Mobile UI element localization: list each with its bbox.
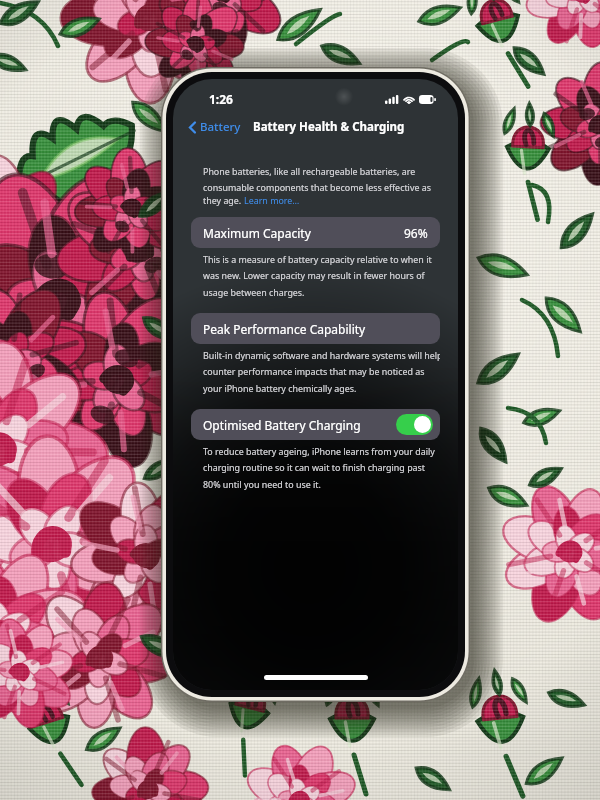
staticText: This is a measure of battery capacity re… (203, 253, 432, 299)
button[interactable]: Optimised Battery Charging toggle, on (396, 414, 433, 435)
staticText: Battery (200, 119, 241, 135)
staticText: Built-in dynamiç software and hardware s… (203, 349, 440, 395)
staticText: Phone batteries, like all rechargeable b… (203, 165, 431, 194)
staticText: Battery Health & Charging (253, 119, 405, 135)
staticText: they age. (203, 194, 244, 206)
staticText: Optimised Battery Charging (203, 417, 361, 433)
button[interactable]: Maximum Capacity (191, 217, 440, 248)
staticText: Maximum Capacity (203, 225, 311, 241)
button[interactable]: Learn more… (244, 194, 300, 206)
button[interactable]: Optimised Battery Charging (191, 409, 440, 440)
staticText: To reduce battery ageing, iPhone learns … (203, 445, 435, 491)
staticText: Peak Performance Capability (203, 321, 366, 337)
button[interactable]: Battery (186, 116, 244, 138)
button[interactable]: Peak Performance Capability (191, 313, 440, 344)
staticText: 1:26 (209, 91, 233, 107)
staticText: 96% (404, 225, 428, 241)
